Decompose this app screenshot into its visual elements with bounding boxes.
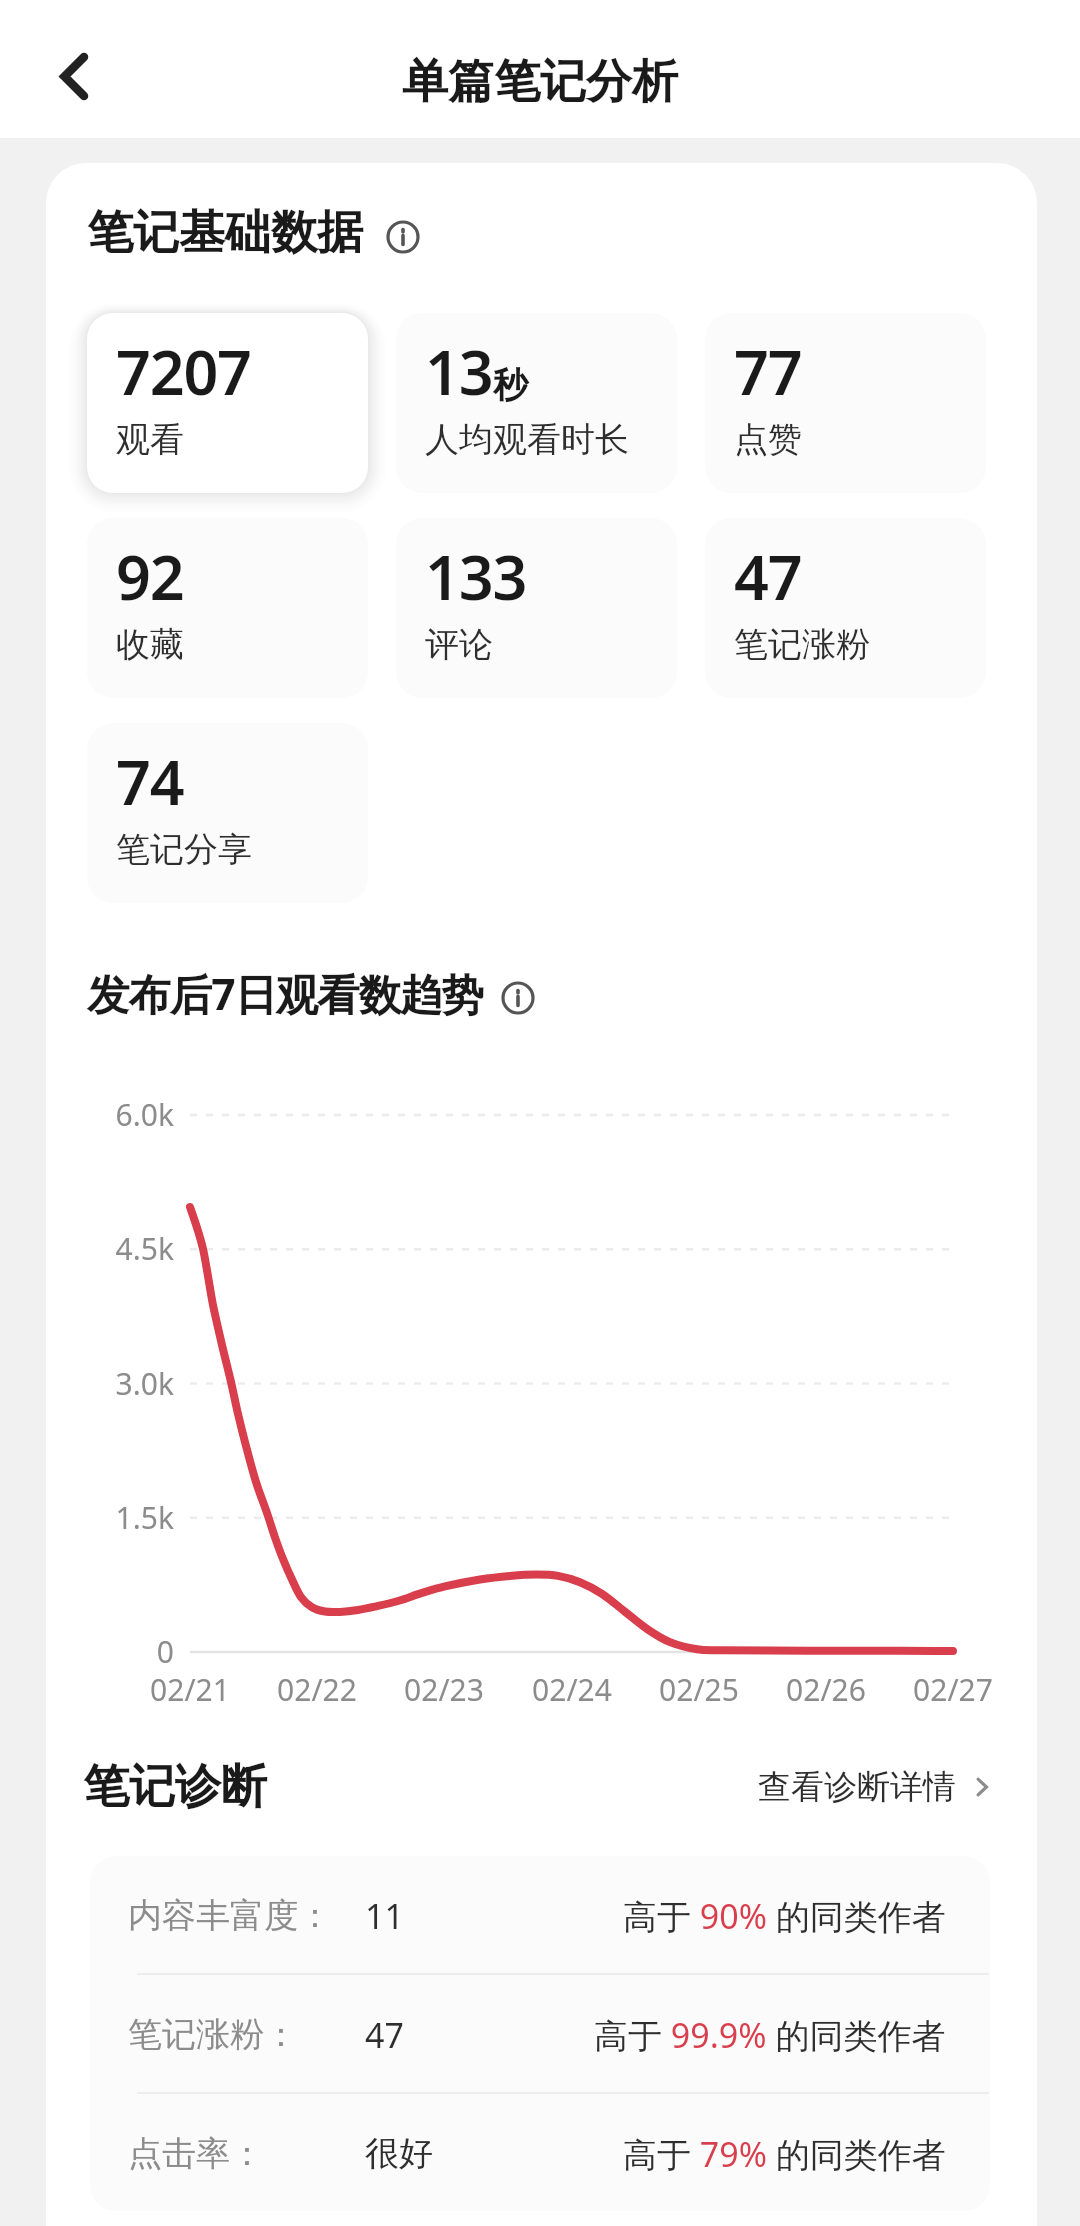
staticText: 02/27 (893, 1669, 1013, 1710)
staticText: 02/26 (766, 1669, 886, 1710)
staticText: 02/21 (130, 1669, 250, 1710)
staticText: 笔记基础数据 (87, 204, 363, 262)
staticText: 4.5k (94, 1228, 174, 1269)
staticText: 133 (425, 535, 527, 618)
button[interactable]: 内容丰富度： (90, 1856, 990, 1973)
button[interactable]: 点击率： (90, 2094, 990, 2211)
staticText: 点击率： (128, 2132, 264, 2175)
staticText: 11 (365, 1893, 404, 1939)
button[interactable]: About 笔记基础数据 (386, 220, 420, 254)
staticText: 02/24 (512, 1669, 632, 1710)
staticText: 0 (94, 1631, 174, 1672)
staticText: 评论 (425, 623, 493, 666)
staticText: 92 (116, 535, 184, 618)
staticText: 3.0k (94, 1363, 174, 1404)
button[interactable]: 13 (396, 313, 677, 493)
staticText: 笔记涨粉： (128, 2013, 298, 2056)
staticText: 高于 90% 的同类作者 (623, 1893, 946, 1939)
staticText: 7207 (116, 330, 251, 413)
staticText: 秒 (493, 363, 528, 407)
button[interactable]: 92 (87, 518, 368, 698)
staticText: 02/25 (639, 1669, 759, 1710)
staticText: 点赞 (734, 418, 802, 461)
staticText: 发布后7日观看数趋势 (87, 965, 483, 1023)
staticText: 02/23 (384, 1669, 504, 1710)
staticText: 观看 (116, 418, 184, 461)
staticText: 1.5k (94, 1497, 174, 1538)
staticText: 02/22 (257, 1669, 377, 1710)
staticText: 高于 79% 的同类作者 (623, 2131, 946, 2177)
staticText: 笔记涨粉 (734, 623, 870, 666)
button[interactable]: 133 (396, 518, 677, 698)
staticText: 47 (365, 2012, 404, 2058)
staticText: 很好 (365, 2132, 433, 2175)
staticText: 74 (116, 740, 184, 823)
button[interactable]: About 发布后7日观看数趋势 (501, 981, 535, 1015)
staticText: 高于 99.9% 的同类作者 (594, 2012, 946, 2058)
staticText: 6.0k (94, 1094, 174, 1135)
staticText: 77 (734, 330, 802, 413)
staticText: 47 (734, 535, 802, 618)
button[interactable]: 查看诊断详情 (754, 1762, 1000, 1812)
staticText: 单篇笔记分析 (402, 53, 678, 111)
button[interactable]: 74 (87, 723, 368, 903)
button[interactable]: 47 (705, 518, 986, 698)
button[interactable]: 7207 (87, 313, 368, 493)
button[interactable]: Back (31, 31, 121, 121)
staticText: 查看诊断详情 (758, 1766, 956, 1808)
staticText: 人均观看时长 (425, 418, 629, 461)
staticText: 收藏 (116, 623, 184, 666)
button[interactable]: 笔记涨粉： (90, 1975, 990, 2092)
staticText: 笔记分享 (116, 828, 252, 871)
button[interactable]: 77 (705, 313, 986, 493)
staticText: 内容丰富度： (128, 1894, 332, 1937)
staticText: 笔记诊断 (83, 1758, 267, 1816)
staticText: 13 (425, 330, 493, 413)
